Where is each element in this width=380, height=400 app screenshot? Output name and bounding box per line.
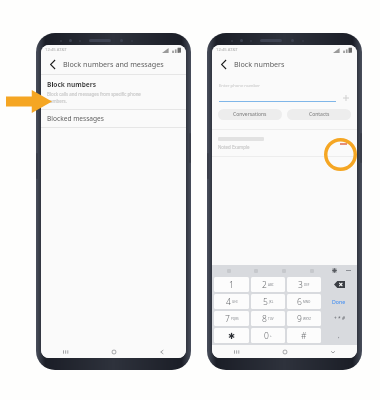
button[interactable]: Conversations <box>218 109 282 120</box>
button[interactable]: 8 <box>251 311 285 326</box>
button[interactable]: 9 <box>287 311 321 326</box>
button[interactable]: Remove number <box>336 136 351 151</box>
staticText: 7 <box>225 313 230 325</box>
button[interactable]: 2 <box>251 277 285 292</box>
staticText: Block numbers and messages <box>63 59 164 69</box>
staticText: + <box>270 334 272 338</box>
button[interactable]: Back <box>217 57 231 71</box>
button[interactable]: Block numbers <box>41 75 186 109</box>
staticText: 5 <box>263 296 268 308</box>
button[interactable]: 6 <box>287 294 321 309</box>
staticText: 3 <box>298 279 303 291</box>
staticText: Enter phone number <box>219 83 261 89</box>
button[interactable]: ✱ <box>214 328 249 343</box>
staticText: Contacts <box>309 111 330 118</box>
button[interactable]: Recents <box>212 345 261 358</box>
staticText: ABC <box>268 283 274 287</box>
button[interactable]: Home <box>261 345 309 358</box>
staticText: 12:45 AT&T <box>45 47 67 53</box>
staticText: 9 <box>297 313 302 325</box>
button[interactable]: 1 <box>214 277 249 292</box>
button[interactable]: Back <box>138 345 186 358</box>
staticText: 1 <box>229 279 234 291</box>
staticText: TUV <box>268 317 274 321</box>
button[interactable]: Hide keyboard <box>309 345 357 358</box>
button[interactable]: 7 <box>214 311 249 326</box>
staticText: 6 <box>297 296 302 308</box>
staticText: Done <box>332 298 346 305</box>
button[interactable]: Home <box>90 345 138 358</box>
staticText: + * # <box>334 315 345 322</box>
button[interactable]: # <box>287 328 321 343</box>
button[interactable]: Keyboard settings <box>326 265 342 276</box>
staticText: Block calls and messages from specific p… <box>47 91 141 97</box>
button[interactable]: Collapse <box>342 265 354 276</box>
staticText: # <box>301 330 307 342</box>
staticText: DEF <box>304 283 310 287</box>
staticText: , <box>338 332 340 340</box>
staticText: PQRS <box>231 317 239 321</box>
staticText: Conversations <box>233 111 267 118</box>
button[interactable]: + * # <box>323 311 355 326</box>
staticText: Block numbers <box>234 59 285 69</box>
staticText: 8 <box>262 313 267 325</box>
staticText: 2 <box>262 279 267 291</box>
staticText: Block numbers <box>47 80 97 89</box>
staticText: numbers. <box>47 98 67 104</box>
staticText: WXYZ <box>303 317 311 321</box>
button[interactable]: Add number <box>342 94 350 102</box>
button[interactable]: Noted Example <box>212 130 357 156</box>
button[interactable]: 0 <box>251 328 285 343</box>
button[interactable]: Backspace <box>323 277 355 292</box>
staticText: ✱ <box>228 331 236 341</box>
button[interactable]: Back <box>46 57 60 71</box>
button[interactable]: Contacts <box>287 109 351 120</box>
staticText: 12:45 AT&T <box>216 47 238 53</box>
button[interactable]: 5 <box>251 294 285 309</box>
button[interactable]: 3 <box>287 277 321 292</box>
staticText: JKL <box>269 300 274 304</box>
staticText: 0 <box>264 330 269 342</box>
staticText: 4 <box>226 296 231 308</box>
button[interactable]: Recents <box>41 345 90 358</box>
button[interactable]: Done <box>323 294 355 309</box>
staticText: GHI <box>232 300 238 304</box>
button[interactable]: 4 <box>214 294 249 309</box>
staticText: Blocked messages <box>47 114 104 123</box>
staticText: MNO <box>303 300 311 304</box>
button[interactable]: Blocked messages <box>41 110 186 127</box>
staticText: Noted Example <box>218 144 250 150</box>
